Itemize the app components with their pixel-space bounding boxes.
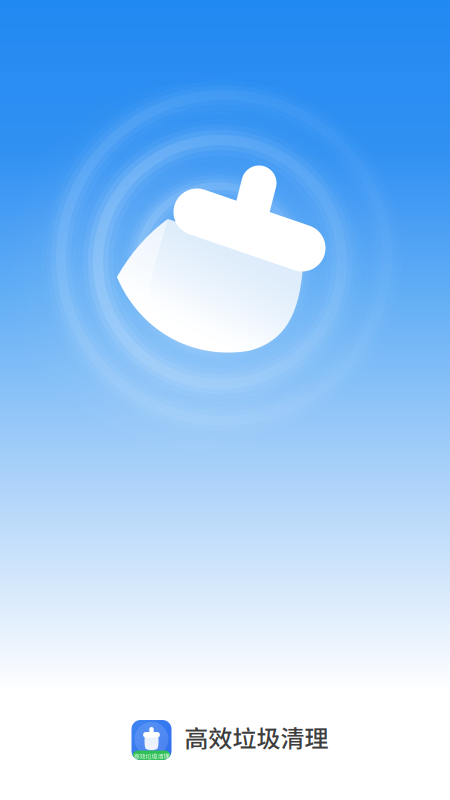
staticText: 高效垃圾清理 (133, 752, 169, 760)
staticText: 高效垃圾清理 (184, 720, 328, 754)
